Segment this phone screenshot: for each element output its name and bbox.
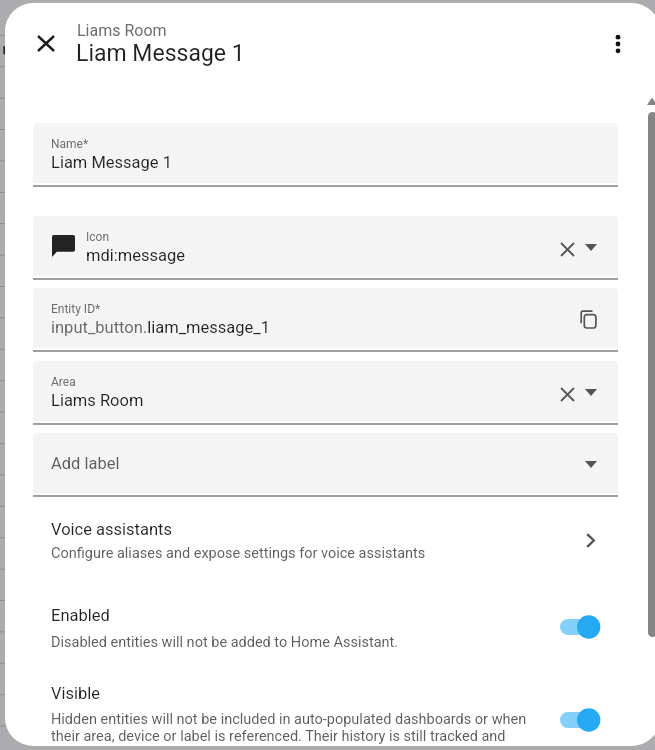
staticText: Visible xyxy=(51,684,101,703)
button[interactable]: Voice assistants xyxy=(33,508,618,566)
staticText: Configure aliases and expose settings fo… xyxy=(51,545,426,562)
button[interactable]: Toggle xyxy=(560,708,601,732)
staticText: Add label xyxy=(51,454,120,473)
button[interactable]: Toggle xyxy=(560,615,601,639)
button[interactable]: Copy entity ID xyxy=(573,304,603,334)
staticText: input_button.liam_message_1 xyxy=(51,318,271,337)
button[interactable]: Clear xyxy=(552,379,582,409)
staticText: Liam Message 1 xyxy=(76,40,245,67)
button[interactable]: Icon xyxy=(33,216,618,276)
staticText: Icon xyxy=(86,230,110,244)
staticText: mdi:message xyxy=(86,246,186,265)
staticText: Hidden entities will not be included in … xyxy=(51,711,551,745)
button[interactable]: Name* xyxy=(33,123,618,183)
button[interactable]: Clear xyxy=(552,234,582,264)
button[interactable]: Add label xyxy=(33,433,618,493)
button[interactable]: Close xyxy=(25,22,67,64)
button[interactable]: Visible xyxy=(33,674,618,746)
staticText: Entity ID* xyxy=(51,302,101,316)
staticText: Liam Message 1 xyxy=(51,153,172,172)
button[interactable]: Area xyxy=(33,361,618,421)
staticText: Area xyxy=(51,375,76,389)
button[interactable]: Enabled xyxy=(33,597,618,659)
staticText: Liams Room xyxy=(77,21,167,40)
staticText: Liams Room xyxy=(51,391,144,410)
button[interactable]: Show options xyxy=(576,377,606,407)
staticText: Enabled xyxy=(51,606,110,625)
button[interactable]: Open voice assistants xyxy=(575,525,605,555)
button[interactable]: Show options xyxy=(576,449,606,479)
button[interactable]: More options xyxy=(597,23,639,65)
button[interactable]: Entity ID* xyxy=(33,288,618,348)
staticText: Voice assistants xyxy=(51,520,172,539)
staticText: Disabled entities will not be added to H… xyxy=(51,634,399,651)
button[interactable]: Show options xyxy=(576,232,606,262)
staticText: Name* xyxy=(51,137,89,151)
